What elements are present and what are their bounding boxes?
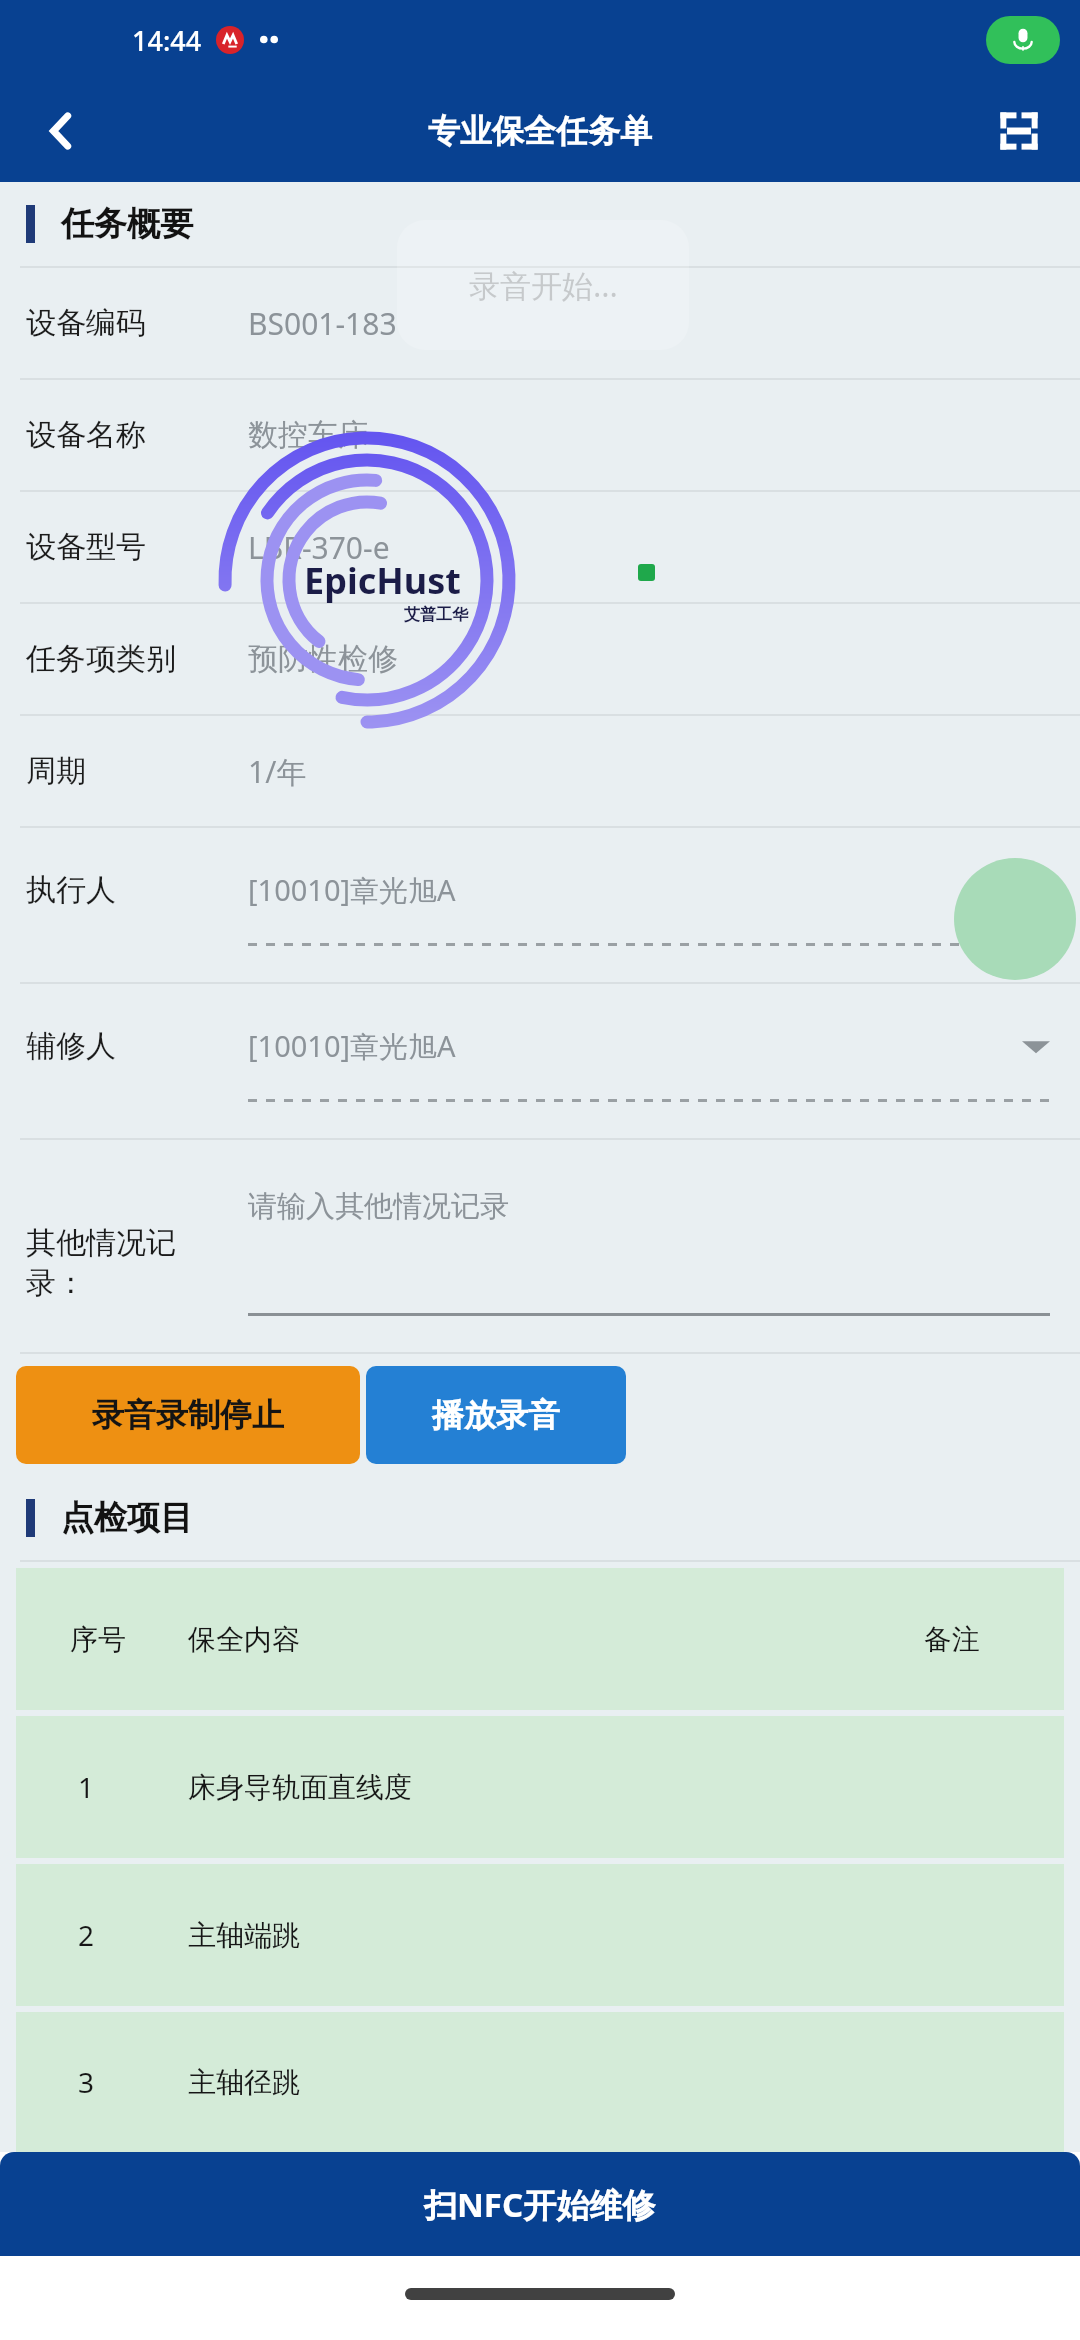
staticText: 设备型号 — [26, 528, 146, 566]
staticText: 其他情况记 录： — [26, 1224, 176, 1302]
button[interactable]: 3 — [16, 2012, 1064, 2152]
staticText: 扫NFC开始维修 — [424, 2182, 656, 2227]
staticText: 艾普工华 — [404, 605, 468, 625]
staticText: 点检项目 — [61, 1497, 193, 1539]
button[interactable]: 设备编码 — [0, 268, 1080, 378]
button[interactable]: Recording microphone — [986, 16, 1060, 64]
button[interactable]: 其他情况记 录： — [0, 1140, 1080, 1352]
button[interactable]: 录音录制停止 — [16, 1366, 360, 1464]
staticText: 2 — [78, 1916, 95, 1954]
staticText: BS001-183 — [248, 303, 397, 344]
button[interactable]: 任务概要 — [0, 182, 1080, 266]
staticText: 专业保全任务单 — [428, 111, 652, 151]
button[interactable]: 扫NFC开始维修 — [0, 2152, 1080, 2256]
button[interactable]: 播放录音 — [366, 1366, 626, 1464]
staticText: 1/年 — [248, 751, 307, 792]
button[interactable]: 周期 — [0, 716, 1080, 826]
staticText: 3 — [78, 2063, 95, 2101]
staticText: 辅修人 — [26, 1027, 116, 1065]
staticText: 数控车床 — [248, 416, 368, 454]
staticText: 预防性检修 — [248, 640, 398, 678]
staticText: 任务概要 — [61, 203, 193, 245]
staticText: EpicHust — [304, 556, 461, 605]
button[interactable]: 设备名称 — [0, 380, 1080, 490]
button[interactable]: 设备型号 — [0, 492, 1080, 602]
staticText: 14:44 — [132, 22, 202, 59]
button[interactable]: Back — [22, 92, 100, 170]
staticText: 周期 — [26, 752, 86, 790]
staticText: [10010]章光旭A — [248, 870, 456, 910]
staticText: 录音录制停止 — [92, 1395, 284, 1435]
staticText: 设备名称 — [26, 416, 146, 454]
button[interactable]: Scan QR code — [980, 92, 1058, 170]
staticText: 任务项类别 — [26, 640, 176, 678]
staticText: 主轴径跳 — [188, 2065, 300, 2100]
button[interactable]: 序号 — [16, 1568, 1064, 1710]
staticText: 主轴端跳 — [188, 1918, 300, 1953]
staticText: 序号 — [70, 1622, 126, 1657]
staticText: 播放录音 — [432, 1395, 560, 1435]
staticText: 请输入其他情况记录 — [248, 1188, 509, 1225]
staticText: 设备编码 — [26, 304, 146, 342]
staticText: 床身导轨面直线度 — [188, 1770, 412, 1805]
staticText: 保全内容 — [188, 1622, 300, 1657]
button[interactable]: 1 — [16, 1716, 1064, 1858]
staticText: [10010]章光旭A — [248, 1026, 456, 1066]
staticText: 备注 — [924, 1622, 980, 1657]
button[interactable]: 任务项类别 — [0, 604, 1080, 714]
staticText: 执行人 — [26, 871, 116, 909]
staticText: LBR-370-e — [248, 527, 390, 568]
staticText: 录音开始... — [469, 264, 618, 306]
button[interactable]: 辅修人 — [0, 984, 1080, 1138]
button[interactable]: 执行人 — [0, 828, 1080, 982]
staticText: 1 — [78, 1768, 95, 1806]
button[interactable]: 点检项目 — [0, 1476, 1080, 1560]
button[interactable]: 2 — [16, 1864, 1064, 2006]
